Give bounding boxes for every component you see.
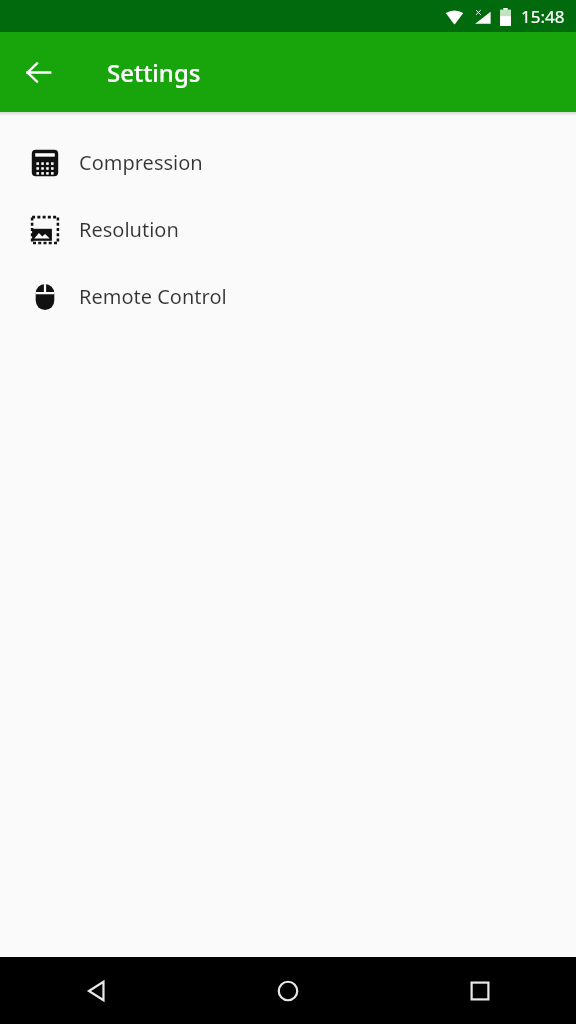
staticText: Remote Control (79, 283, 227, 310)
button[interactable]: Resolution (0, 196, 576, 263)
button[interactable]: Back (0, 957, 192, 1024)
button[interactable]: Recent apps (384, 957, 576, 1024)
button[interactable]: Back (12, 46, 64, 98)
staticText: Resolution (79, 216, 179, 243)
staticText: Settings (107, 56, 201, 89)
button[interactable]: Home (192, 957, 384, 1024)
button[interactable]: Remote Control (0, 263, 576, 330)
staticText: 15:48 (521, 5, 565, 28)
staticText: Compression (79, 149, 203, 176)
button[interactable]: Compression (0, 129, 576, 196)
